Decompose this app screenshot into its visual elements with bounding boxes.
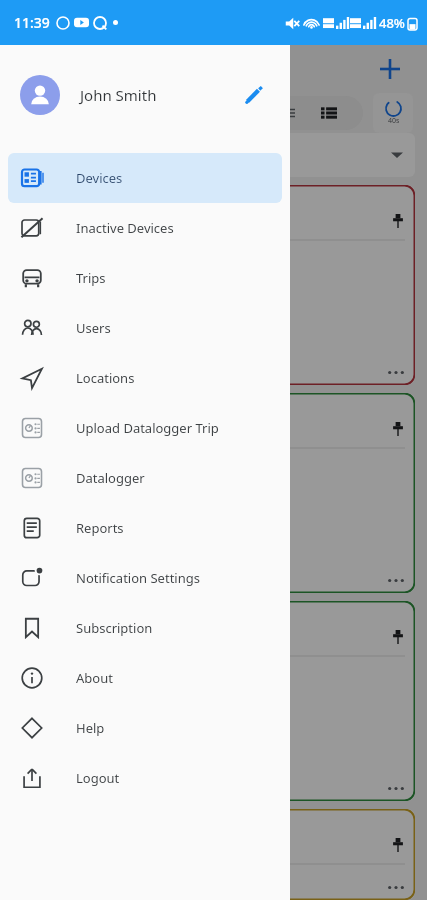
button[interactable]: 100.0% — [12, 809, 415, 900]
staticText: Logout — [76, 769, 120, 787]
staticText: Carbon Dioxide - %CO — [22, 253, 157, 271]
staticText: Locations — [76, 369, 135, 387]
other: Pin — [391, 630, 405, 644]
staticText: 48% — [379, 14, 405, 32]
staticText: All Devices — [24, 146, 89, 164]
button[interactable]: Notification Settings — [8, 553, 282, 603]
staticText: %CO2 — [22, 277, 59, 295]
staticText: 0.0% — [40, 195, 65, 210]
button[interactable]: Help — [8, 703, 282, 753]
button[interactable]: 30.0% — [12, 601, 415, 801]
staticText: 41.0% — [96, 611, 127, 626]
other: Pin — [391, 214, 405, 228]
button[interactable]: Add — [375, 54, 405, 84]
staticText: Reports — [76, 519, 124, 537]
button[interactable]: Inactive Devices — [8, 203, 282, 253]
other: More options — [387, 370, 405, 375]
other: More options — [387, 786, 405, 791]
staticText: Temperature — [22, 669, 101, 687]
staticText: 30.0% — [90, 195, 121, 210]
button[interactable]: All Devices — [12, 133, 415, 177]
button[interactable]: Locations — [8, 353, 282, 403]
button[interactable] — [253, 96, 363, 130]
staticText: Users — [76, 319, 111, 337]
button[interactable]: Devices — [8, 153, 282, 203]
staticText: Temperature — [22, 461, 101, 479]
other: Pin — [391, 838, 405, 852]
staticText: Help — [76, 719, 105, 737]
button[interactable]: 0.0% — [12, 185, 415, 385]
button[interactable]: John Smith — [0, 45, 290, 145]
staticText: 40s — [388, 116, 400, 126]
staticText: Upload Datalogger Trip — [76, 419, 219, 437]
other: More options — [387, 578, 405, 583]
button[interactable]: Logout — [8, 753, 282, 803]
button[interactable]: Users — [8, 303, 282, 353]
other: Pin — [391, 422, 405, 436]
button[interactable]: Edit profile — [236, 78, 270, 112]
staticText: 11:39 — [14, 13, 50, 32]
staticText: Devices — [76, 169, 123, 187]
other: More options — [387, 885, 405, 890]
staticText: Inactive Devices — [76, 219, 174, 237]
button[interactable]: Refresh — [373, 93, 413, 133]
staticText: John Smith — [80, 85, 157, 105]
staticText: Subscription — [76, 619, 153, 637]
staticText: Datalogger — [76, 469, 145, 487]
staticText: About — [76, 669, 113, 687]
staticText: Trips — [76, 269, 106, 287]
button[interactable]: 13.0% — [12, 393, 415, 593]
button[interactable]: About — [8, 653, 282, 703]
button[interactable]: Reports — [8, 503, 282, 553]
button[interactable]: Datalogger — [8, 453, 282, 503]
staticText: Notification Settings — [76, 569, 200, 587]
button[interactable]: Subscription — [8, 603, 282, 653]
button[interactable]: Upload Datalogger Trip — [8, 403, 282, 453]
button[interactable]: Trips — [8, 253, 282, 303]
